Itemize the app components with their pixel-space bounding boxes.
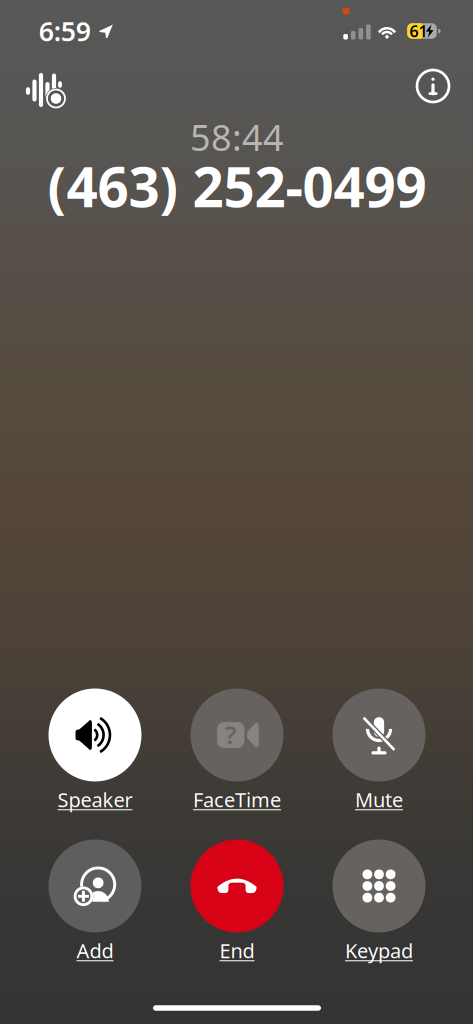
button[interactable]: Call details [415, 68, 451, 104]
button[interactable]: Speaker [29, 659, 161, 810]
staticText: FaceTime [193, 786, 281, 813]
staticText: Add [76, 937, 113, 964]
staticText: Keypad [345, 937, 413, 964]
button[interactable]: Mute [313, 659, 445, 810]
button[interactable]: Keypad [313, 810, 445, 961]
staticText: Mute [355, 786, 403, 813]
button[interactable]: ? [171, 659, 303, 810]
staticText: (463) 252-0499 [47, 150, 426, 222]
staticText: 61 [409, 20, 427, 42]
button[interactable]: End [171, 810, 303, 961]
button[interactable]: Add [29, 810, 161, 961]
button[interactable]: Voice Isolation [23, 68, 67, 112]
staticText: Speaker [57, 786, 132, 813]
staticText: 58:44 [190, 113, 284, 161]
staticText: End [219, 937, 254, 964]
staticText: 6:59 [39, 13, 91, 49]
staticText: ? [225, 718, 237, 751]
